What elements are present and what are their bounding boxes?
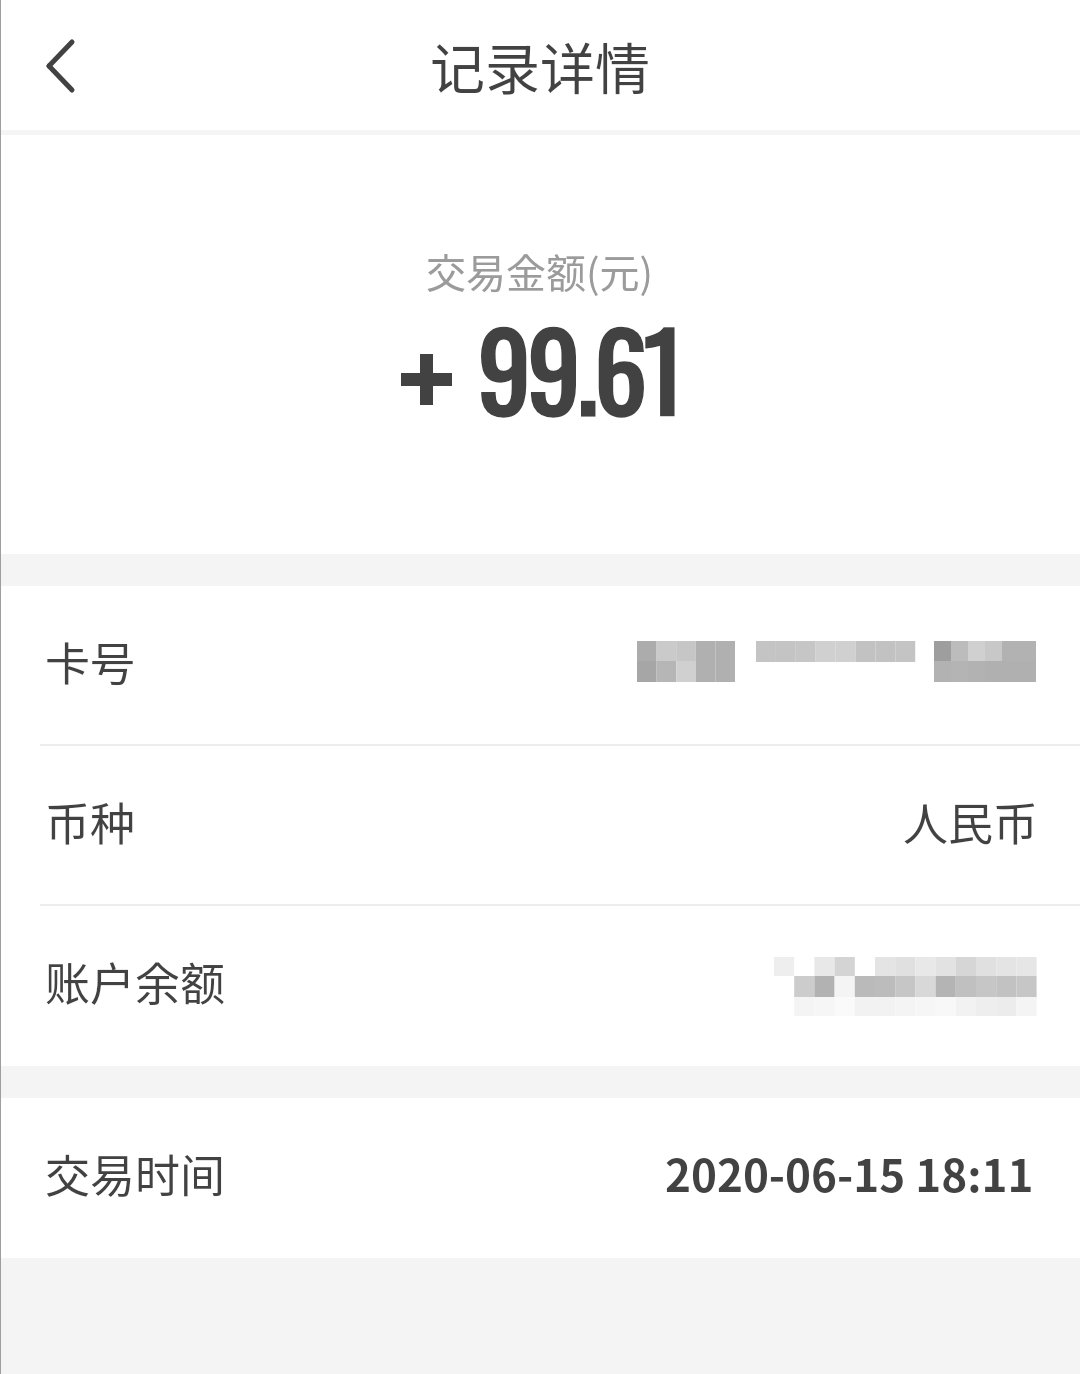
button[interactable]: Back — [0, 3, 125, 128]
staticText: 卡号 — [45, 629, 136, 694]
button[interactable]: 交易时间 — [0, 1098, 1080, 1258]
staticText: 交易金额(元) — [426, 242, 654, 300]
button[interactable]: 币种 — [0, 746, 1080, 906]
staticText: 记录详情 — [430, 25, 651, 105]
staticText: 交易时间 — [45, 1141, 226, 1206]
staticText: 账户余额 — [45, 949, 226, 1014]
staticText: 人民币 — [903, 789, 1039, 854]
staticText: 99.61 — [478, 290, 681, 446]
button[interactable]: 卡号 — [0, 586, 1080, 746]
staticText: 2020-06-15 18:11 — [665, 1141, 1034, 1205]
staticText: 币种 — [45, 789, 136, 854]
button[interactable]: 账户余额 — [0, 906, 1080, 1066]
